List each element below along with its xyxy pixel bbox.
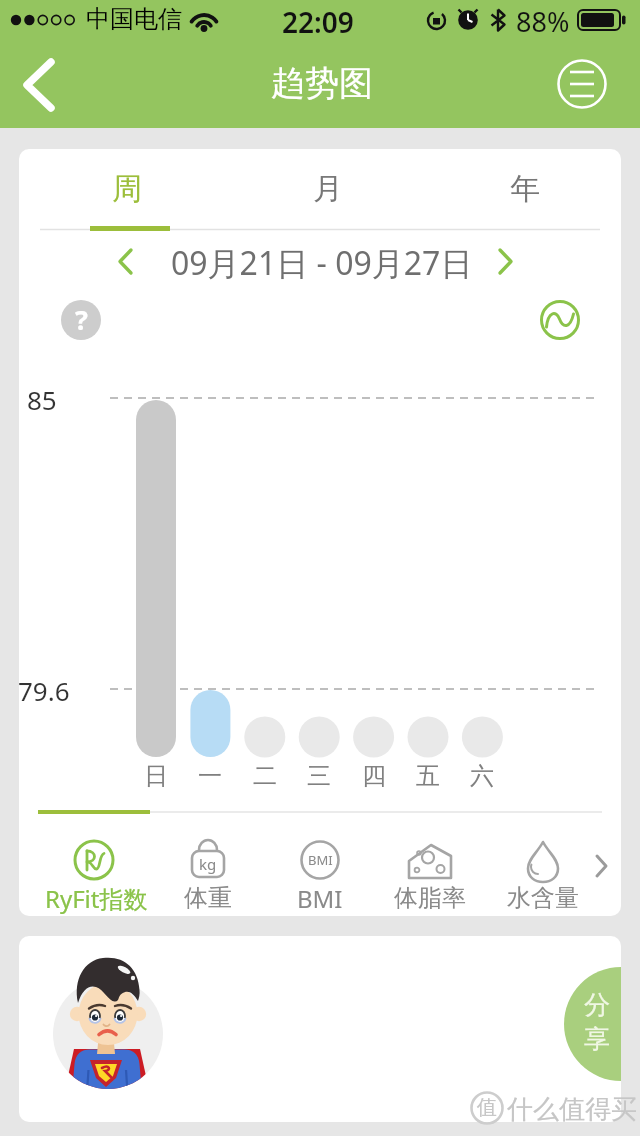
staticText: 五: [416, 761, 440, 791]
staticText: 什么值得买: [507, 1093, 637, 1126]
staticText: 年: [510, 170, 540, 208]
staticText: 体重: [184, 883, 232, 913]
button[interactable]: [8, 52, 72, 116]
staticText: 享: [584, 1023, 610, 1056]
button[interactable]: [382, 832, 478, 918]
button[interactable]: 周: [67, 166, 187, 212]
staticText: 趋势图: [271, 62, 373, 105]
staticText: 四: [362, 761, 386, 791]
button[interactable]: [57, 296, 105, 344]
button[interactable]: 月: [268, 166, 388, 212]
staticText: 88%: [516, 3, 570, 35]
staticText: 值: [477, 1095, 497, 1120]
staticText: 一: [198, 761, 222, 791]
button[interactable]: [486, 240, 536, 284]
staticText: 日: [144, 761, 168, 791]
staticText: 79.6: [18, 673, 70, 703]
button[interactable]: [588, 840, 622, 894]
button[interactable]: [494, 832, 592, 918]
staticText: 中国电信: [86, 4, 182, 34]
staticText: 六: [470, 761, 494, 791]
staticText: 二: [253, 761, 277, 791]
staticText: 分: [584, 989, 610, 1022]
button[interactable]: 年: [465, 166, 585, 212]
staticText: 水含量: [507, 883, 579, 913]
staticText: ?: [75, 301, 88, 338]
button[interactable]: [36, 832, 160, 918]
button[interactable]: [166, 832, 252, 918]
staticText: 09月21日 - 09月27日: [171, 241, 473, 281]
staticText: kg: [199, 854, 217, 874]
staticText: BMI: [308, 851, 333, 869]
button[interactable]: [276, 832, 364, 918]
button[interactable]: [537, 297, 583, 343]
staticText: 周: [112, 170, 142, 208]
button[interactable]: [550, 52, 614, 116]
staticText: RyFit指数: [45, 882, 148, 914]
button[interactable]: [53, 958, 163, 1090]
button[interactable]: [100, 240, 150, 284]
button[interactable]: [564, 967, 621, 1081]
staticText: 三: [307, 761, 331, 791]
staticText: 月: [313, 170, 343, 208]
staticText: 85: [27, 382, 57, 412]
staticText: 体脂率: [394, 883, 466, 913]
staticText: 22:09: [282, 3, 354, 35]
staticText: BMI: [297, 882, 343, 914]
